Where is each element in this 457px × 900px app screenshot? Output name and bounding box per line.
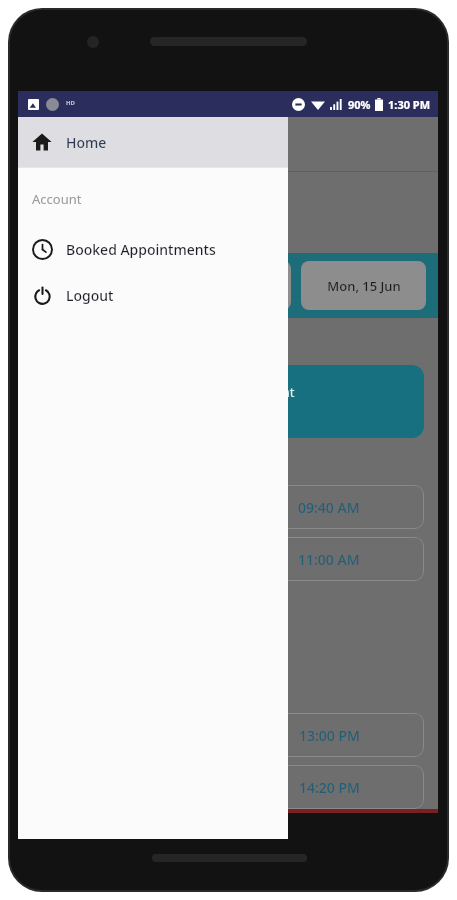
button[interactable]: If you book an urgent request, we might …: [32, 365, 424, 438]
button[interactable]: Booked Appointments: [18, 226, 288, 272]
button[interactable]: Mon, 14 Jun: [166, 261, 291, 310]
staticText: Booked Appointments: [66, 240, 216, 259]
button[interactable]: [18, 809, 438, 813]
staticText: Book Appointment: [74, 134, 219, 156]
button[interactable]: Mon, 15 Jun: [301, 261, 426, 310]
other: Booked Appointments: [33, 240, 52, 259]
staticText: Sun, 13 Jun: [59, 277, 128, 295]
staticText: 11:00 AM: [298, 550, 360, 569]
staticText: Account: [32, 190, 82, 208]
staticText: Home: [66, 133, 107, 152]
button[interactable]: Logout: [18, 272, 288, 318]
staticText: 09:40 AM: [298, 498, 360, 517]
other: Logout: [33, 286, 52, 305]
staticText: Mon, 15 Jun: [327, 277, 401, 295]
button[interactable]: 09:40 AM: [234, 485, 424, 529]
staticText: 13:00 PM: [299, 726, 360, 745]
staticText: 14:20 PM: [299, 778, 360, 797]
button[interactable]: 14:20 PM: [234, 765, 424, 809]
button[interactable]: Sun, 13 Jun: [30, 261, 156, 310]
button[interactable]: 13:00 PM: [234, 713, 424, 757]
staticText: Logout: [66, 286, 114, 305]
button[interactable]: Home: [18, 117, 288, 167]
staticText: HD: [66, 99, 75, 107]
staticText: 90%: [348, 97, 371, 112]
other: Home: [32, 132, 52, 152]
button[interactable]: 11:00 AM: [234, 537, 424, 581]
staticText: 1:30 PM: [388, 97, 431, 112]
staticText: If you book an urgent request, we might …: [48, 383, 295, 420]
